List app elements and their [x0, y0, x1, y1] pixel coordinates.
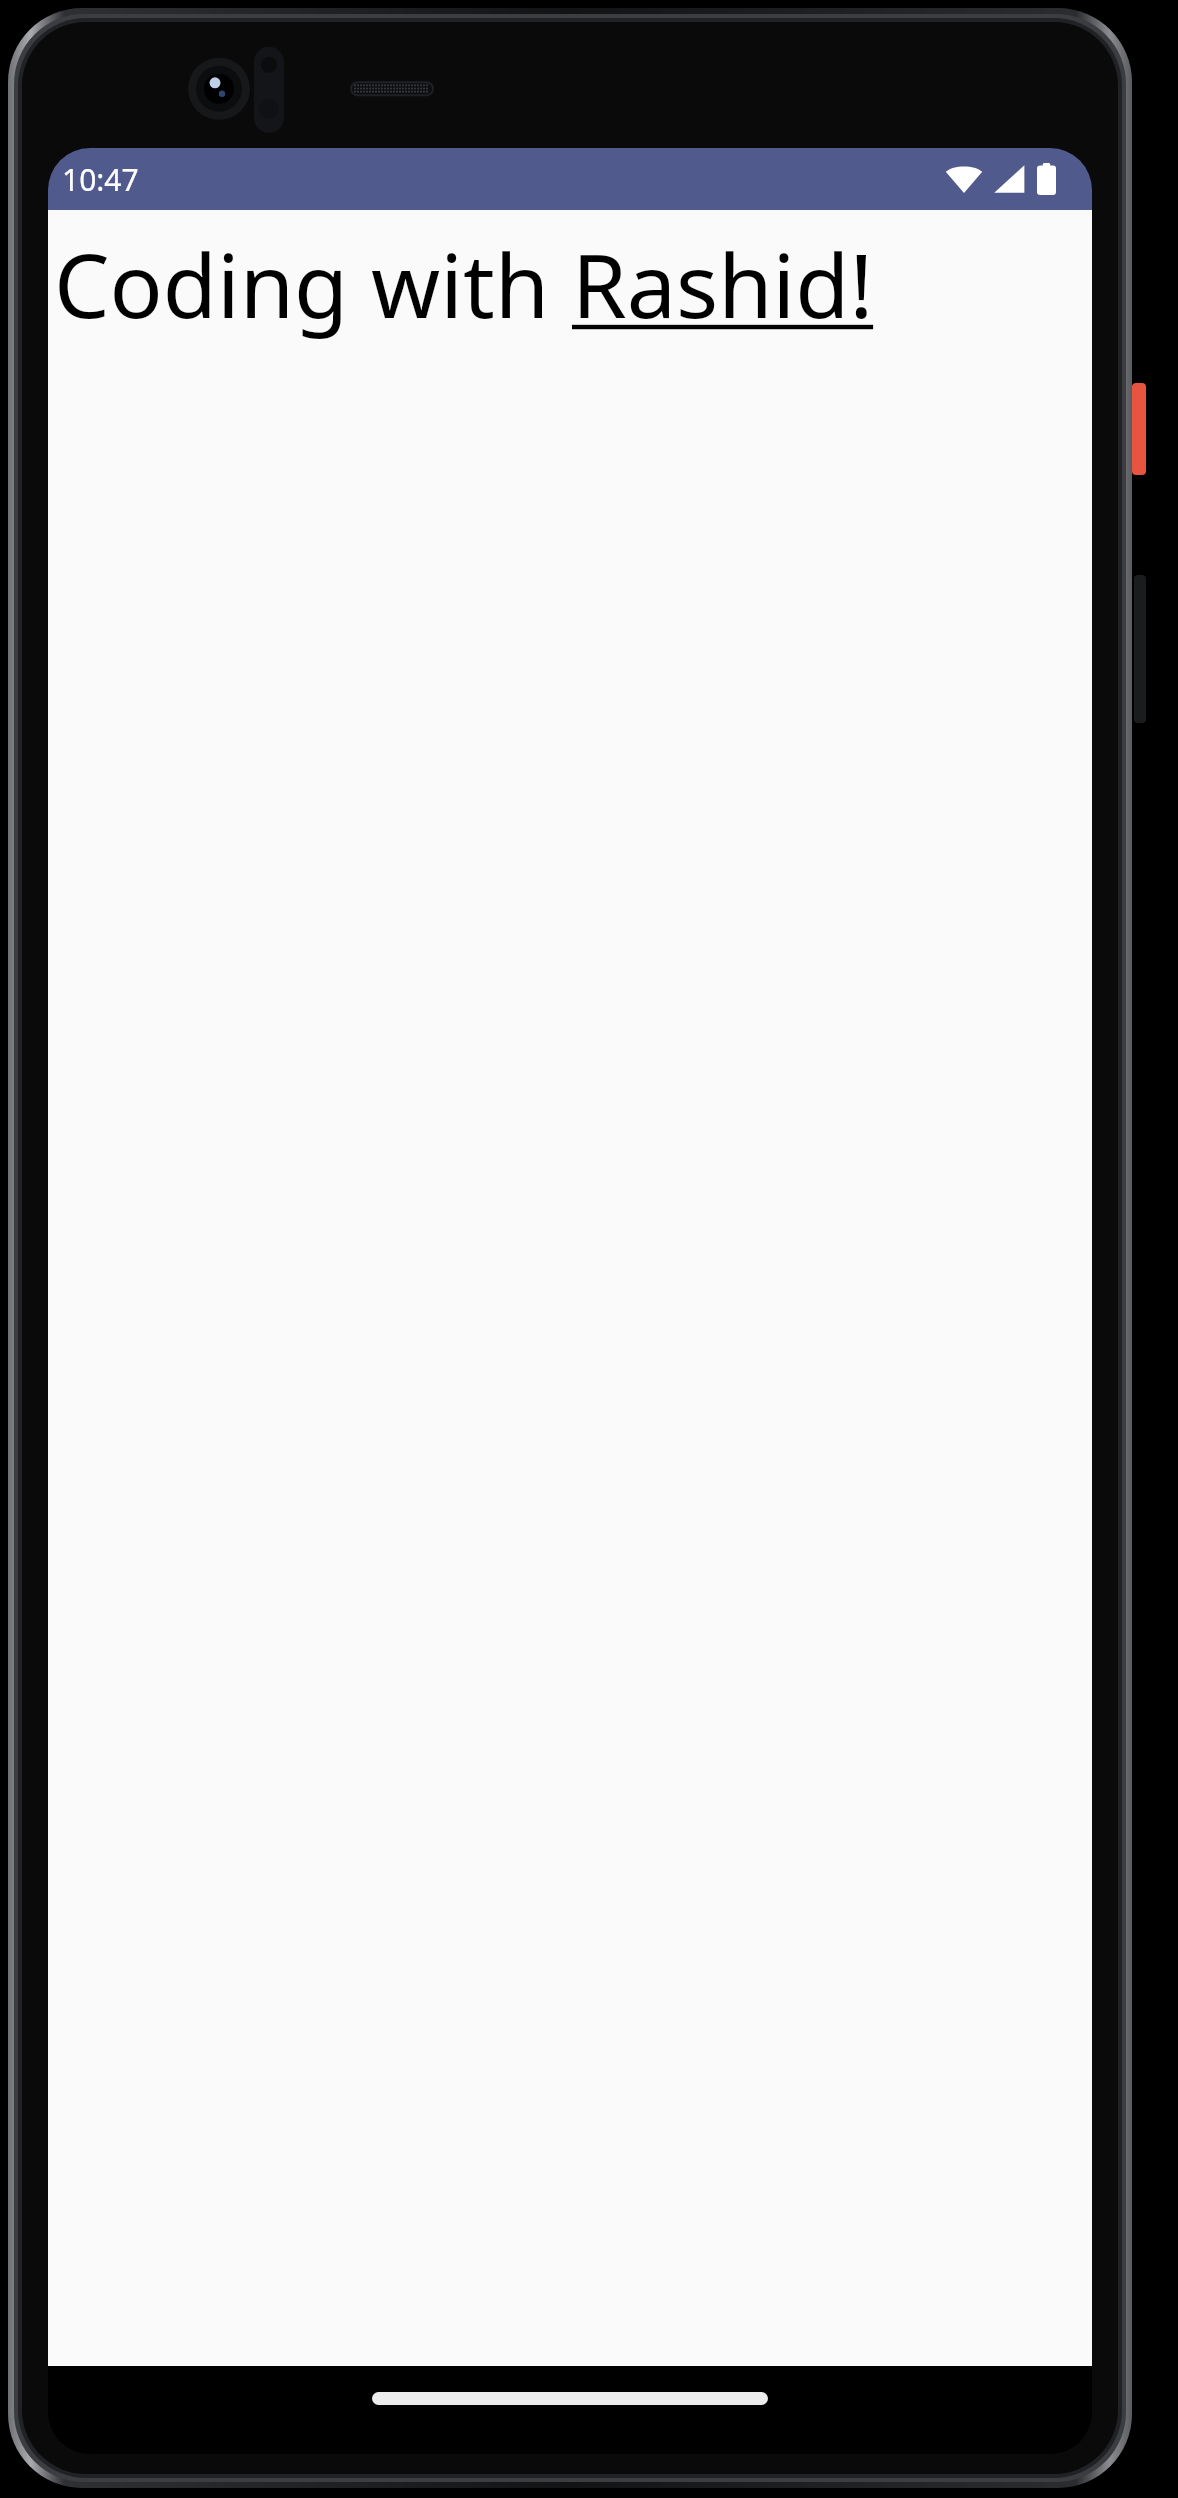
button[interactable]: Home gesture handle — [372, 2392, 768, 2405]
other: Wi-Fi signal — [945, 164, 983, 194]
staticText: 10:47 — [62, 159, 139, 200]
other: Cellular signal — [993, 164, 1025, 194]
button[interactable]: Coding with Rashid! — [54, 224, 874, 344]
other: Battery — [1037, 163, 1056, 195]
